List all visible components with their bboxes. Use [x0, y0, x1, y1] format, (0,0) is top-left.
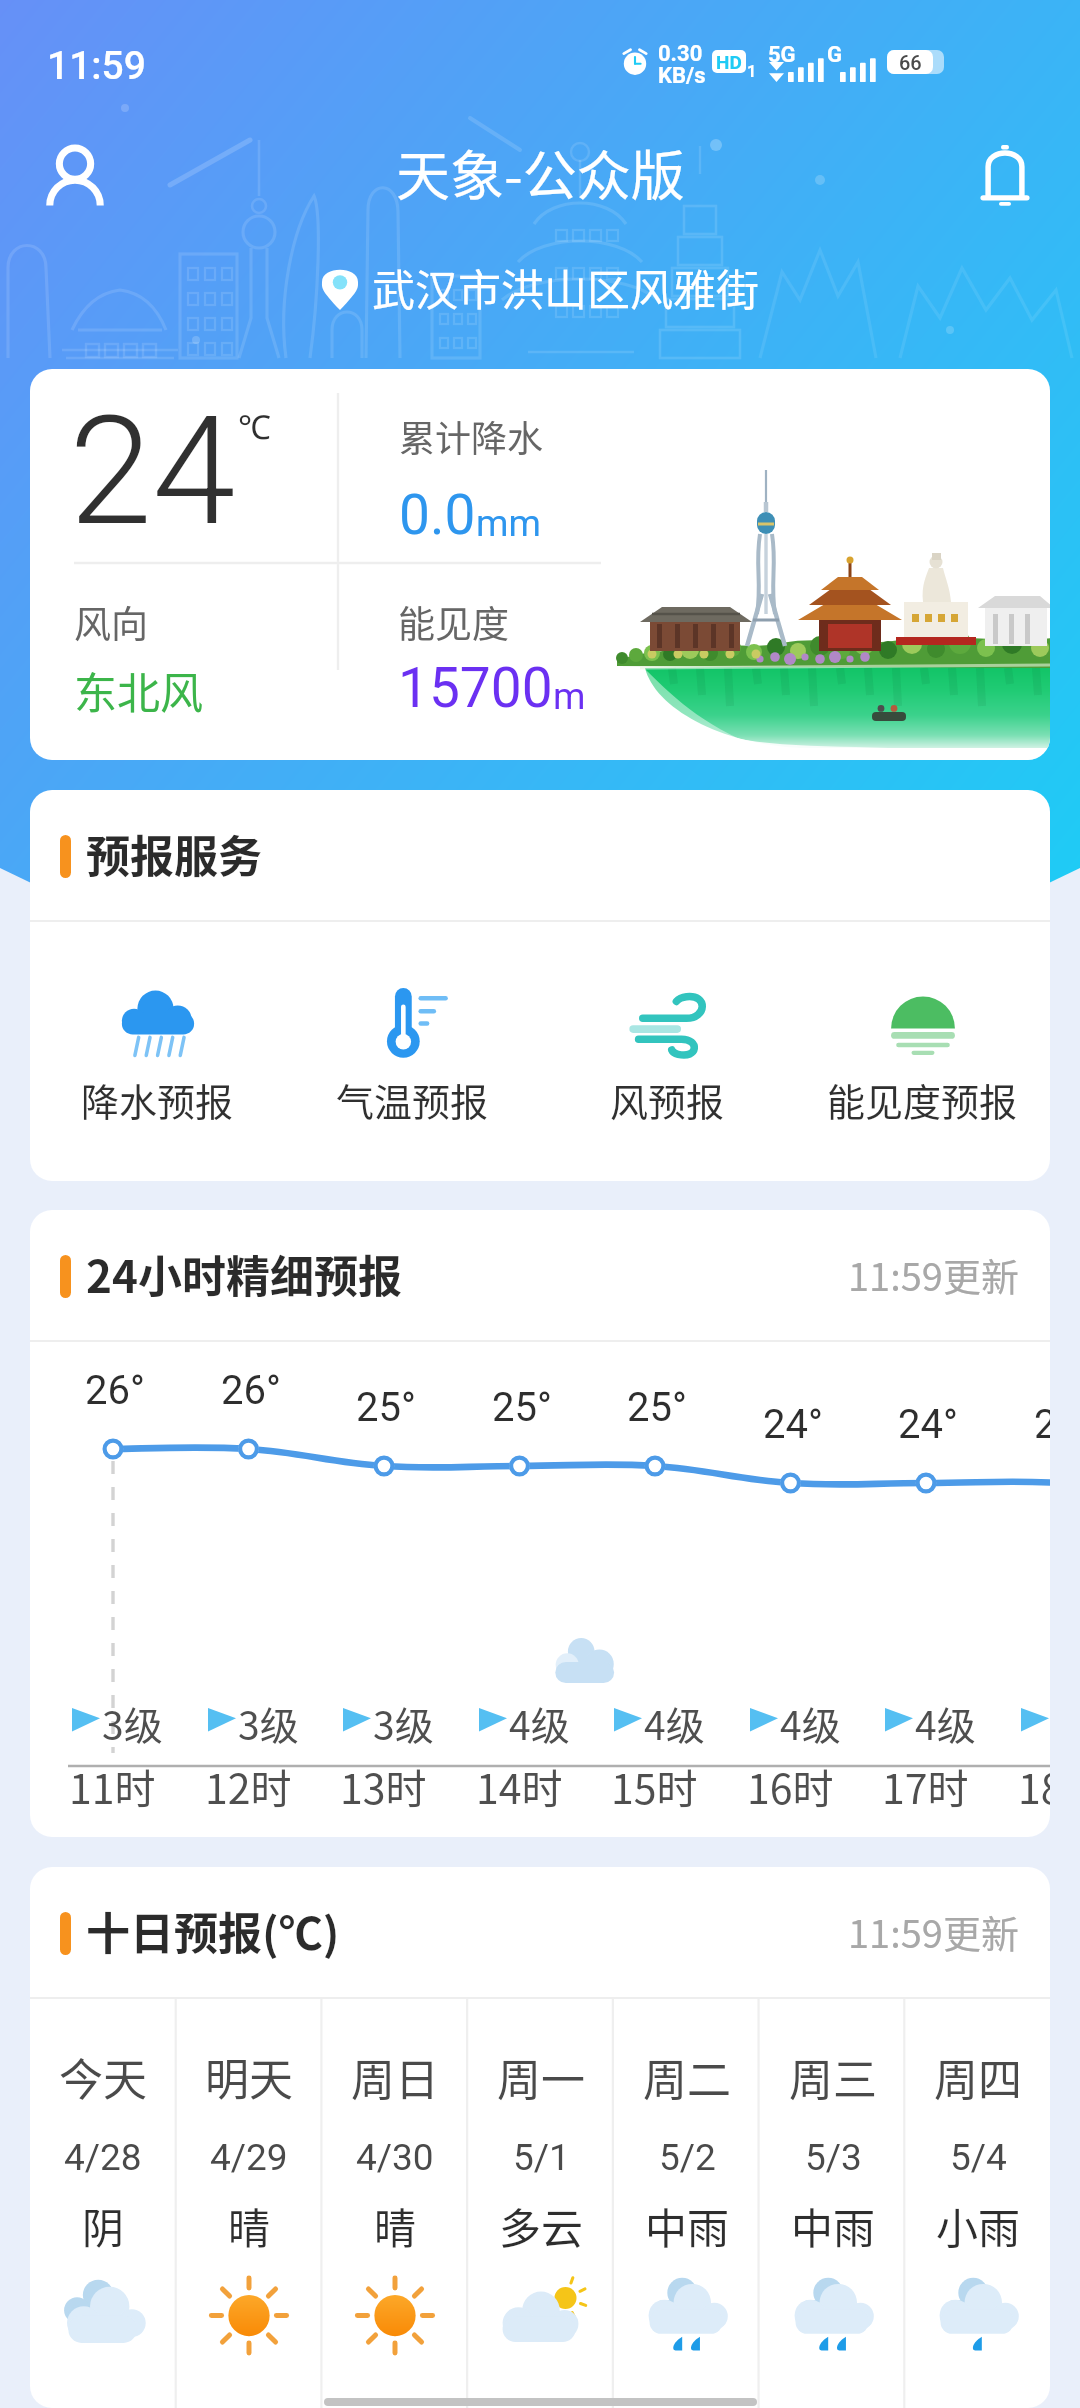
staticText: 4级	[915, 1695, 976, 1751]
staticText: 24°	[898, 1401, 958, 1448]
staticText: 3级	[373, 1695, 434, 1751]
staticText: 24	[69, 384, 236, 560]
staticText: 4级	[780, 1695, 841, 1751]
staticText: m	[553, 675, 586, 718]
staticText: 4/30	[356, 2136, 434, 2179]
staticText: 1	[747, 62, 757, 81]
staticText: 26°	[85, 1367, 145, 1414]
staticText: 25°	[492, 1384, 552, 1431]
staticText: 3级	[238, 1695, 299, 1751]
staticText: 15时	[611, 1756, 698, 1815]
staticText: 风预报	[610, 1072, 725, 1127]
staticText: 5/4	[950, 2136, 1007, 2179]
staticText: 24小时精细预报	[86, 1242, 402, 1306]
staticText: 0.30	[658, 41, 703, 67]
staticText: 周四	[934, 2045, 1022, 2109]
staticText: 气温预报	[336, 1072, 489, 1127]
staticText: 预报服务	[86, 822, 262, 886]
staticText: 累计降水	[399, 410, 544, 462]
staticText: 周三	[789, 2045, 877, 2109]
staticText: 4级	[509, 1695, 570, 1751]
staticText: 12时	[205, 1756, 292, 1815]
staticText: 15700	[398, 656, 553, 720]
staticText: 明天	[205, 2045, 293, 2109]
staticText: 晴	[228, 2195, 271, 2256]
staticText: 能见度	[398, 595, 509, 649]
staticText: 5/1	[513, 2136, 570, 2179]
staticText: 阴	[82, 2195, 125, 2256]
staticText: 周日	[351, 2045, 439, 2109]
button[interactable]: 周四	[906, 1999, 1050, 2408]
staticText: 天象-公众版	[396, 133, 685, 211]
staticText: 25°	[627, 1384, 687, 1431]
button[interactable]: 周二	[614, 1999, 760, 2408]
button[interactable]: 周三	[760, 1999, 906, 2408]
staticText: 多云	[499, 2195, 584, 2256]
button[interactable]: 风预报	[540, 963, 795, 1141]
staticText: 26°	[221, 1367, 281, 1414]
staticText: 降水预报	[81, 1072, 234, 1127]
staticText: 13时	[340, 1756, 427, 1815]
staticText: HD	[716, 51, 742, 73]
button[interactable]: 气温预报	[285, 963, 540, 1141]
staticText: 16时	[747, 1756, 834, 1815]
staticText: 能见度预报	[827, 1072, 1018, 1127]
button[interactable]: Notifications	[960, 135, 1050, 225]
staticText: 25°	[356, 1384, 416, 1431]
staticText: 周一	[497, 2045, 585, 2109]
staticText: 中雨	[791, 2195, 876, 2256]
staticText: 11:59更新	[848, 1904, 1019, 1959]
button[interactable]: 降水预报	[30, 963, 285, 1141]
staticText: 十日预报(℃)	[86, 1899, 340, 1963]
staticText: 5G	[768, 42, 796, 68]
staticText: 中雨	[645, 2195, 730, 2256]
staticText: 0.0	[399, 483, 476, 547]
staticText: 5/3	[805, 2136, 862, 2179]
staticText: 风向	[74, 595, 148, 649]
staticText: 24°	[1034, 1401, 1050, 1448]
staticText: 今天	[59, 2045, 147, 2109]
button[interactable]: 明天	[176, 1999, 322, 2408]
staticText: 17时	[882, 1756, 969, 1815]
staticText: 晴	[374, 2195, 417, 2256]
staticText: 11时	[69, 1756, 156, 1815]
staticText: G	[827, 42, 842, 68]
staticText: 4/28	[64, 2136, 142, 2179]
staticText: 11:59更新	[848, 1247, 1019, 1302]
staticText: 东北风	[74, 659, 203, 721]
staticText: 5/2	[659, 2136, 716, 2179]
staticText: 14时	[476, 1756, 563, 1815]
staticText: 3级	[102, 1695, 163, 1751]
staticText: 周二	[643, 2045, 731, 2109]
button[interactable]: 今天	[30, 1999, 176, 2408]
staticText: 4/29	[210, 2136, 288, 2179]
button[interactable]: Profile	[30, 133, 120, 223]
staticText: 66	[899, 51, 922, 74]
staticText: 小雨	[936, 2195, 1021, 2256]
staticText: KB/s	[658, 63, 706, 89]
staticText: 4级	[644, 1695, 705, 1751]
button[interactable]: 能见度预报	[795, 963, 1050, 1141]
staticText: ℃	[238, 404, 271, 449]
staticText: 24°	[763, 1401, 823, 1448]
staticText: 11:59	[47, 43, 146, 89]
button[interactable]: 周一	[468, 1999, 614, 2408]
staticText: 武汉市洪山区风雅街	[372, 256, 759, 318]
staticText: 18时	[1018, 1756, 1050, 1815]
button[interactable]: 周日	[322, 1999, 468, 2408]
staticText: mm	[476, 502, 541, 545]
